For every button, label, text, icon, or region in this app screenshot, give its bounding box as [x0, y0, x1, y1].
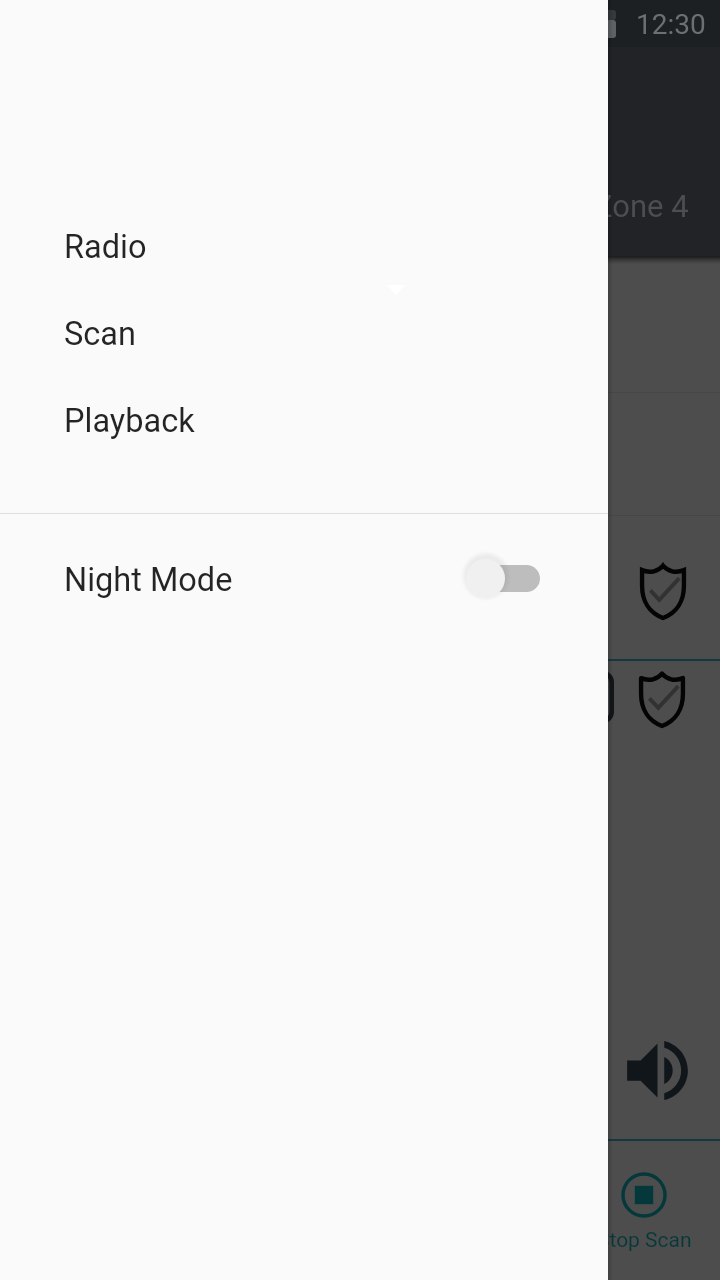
- staticText: Zone 4: [594, 188, 689, 224]
- button[interactable]: Stop Scan: [576, 1171, 712, 1277]
- other: Stop Scan: [620, 1171, 668, 1219]
- other: Volume: [617, 1030, 698, 1111]
- button[interactable]: Zone 4: [570, 171, 710, 233]
- staticText: Stop Scan: [597, 1228, 692, 1253]
- button[interactable]: Night Mode toggle: [466, 550, 566, 606]
- staticText: Night Mode: [64, 561, 233, 599]
- staticText: Radio: [64, 228, 147, 266]
- button[interactable]: Playback: [0, 377, 608, 464]
- button[interactable]: Scan: [0, 290, 608, 377]
- staticText: Scan: [64, 315, 136, 353]
- staticText: Playback: [64, 402, 195, 440]
- button[interactable]: Radio: [0, 203, 608, 290]
- button[interactable]: Night Mode: [0, 516, 608, 644]
- staticText: 12:30: [636, 8, 706, 41]
